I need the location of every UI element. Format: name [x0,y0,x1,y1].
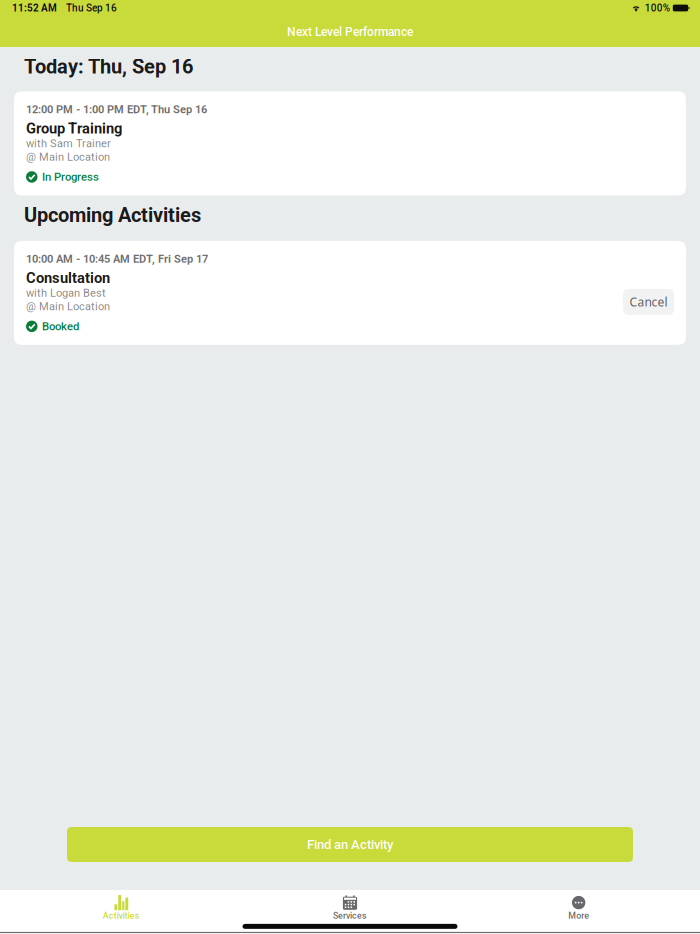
staticText: Booked [42,320,79,333]
staticText: Today: Thu, Sep 16 [24,55,193,78]
staticText: 11:52 AM [12,2,57,14]
staticText: 100% [645,2,670,14]
button[interactable]: Find an Activity [67,827,633,862]
button[interactable]: Cancel [623,289,674,315]
staticText: 12:00 PM - 1:00 PM EDT, Thu Sep 16 [26,103,207,116]
staticText: Upcoming Activities [24,203,201,227]
button[interactable]: Services [236,886,464,928]
staticText: Group Training [26,120,122,137]
staticText: with Sam Trainer [26,137,111,150]
staticText: @ Main Location [26,300,110,313]
staticText: Thu Sep 16 [66,2,117,14]
staticText: More [568,911,589,921]
staticText: @ Main Location [26,150,110,163]
staticText: Find an Activity [307,837,393,852]
staticText: Consultation [26,269,110,286]
staticText: Cancel [629,294,667,310]
staticText: with Logan Best [26,286,106,299]
staticText: Activities [103,911,140,921]
staticText: In Progress [42,170,99,184]
button[interactable]: Activities [7,886,236,928]
button[interactable]: More [464,886,693,928]
staticText: Services [333,911,367,921]
staticText: 10:00 AM - 10:45 AM EDT, Fri Sep 17 [26,252,208,265]
staticText: Next Level Performance [287,25,413,39]
